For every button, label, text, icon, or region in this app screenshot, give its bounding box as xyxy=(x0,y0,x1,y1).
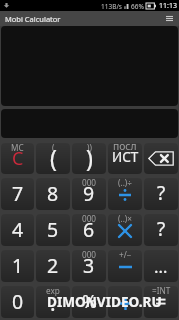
button[interactable]: 0 xyxy=(1,286,34,318)
staticText: = xyxy=(155,288,167,315)
staticText: MC xyxy=(11,143,24,153)
staticText: посл xyxy=(113,143,137,153)
staticText: ) xyxy=(86,143,93,173)
button[interactable]: 7 xyxy=(1,178,34,210)
button[interactable]: ? xyxy=(144,178,178,210)
staticText: ( xyxy=(50,143,57,173)
button[interactable]: Divide xyxy=(108,178,142,210)
staticText: % xyxy=(82,289,97,314)
staticText: 9 xyxy=(83,180,95,207)
staticText: )) xyxy=(87,143,92,153)
staticText: DIMONVIDEO.RU xyxy=(47,292,162,311)
button[interactable]: ( xyxy=(36,143,70,174)
staticText: 1 xyxy=(12,252,24,279)
staticText: 000 xyxy=(82,214,97,224)
staticText: 000 xyxy=(82,250,97,260)
staticText: 0 xyxy=(12,288,24,315)
button[interactable]: MC xyxy=(1,143,34,174)
staticText: 66% xyxy=(131,2,144,11)
staticText: 7 xyxy=(12,180,24,207)
button[interactable]: Menu xyxy=(165,13,174,24)
staticText: 5 xyxy=(47,216,59,243)
button[interactable]: =INT xyxy=(144,286,178,318)
button[interactable]: 2 xyxy=(36,250,70,282)
staticText: ? xyxy=(157,180,166,206)
staticText: 2 xyxy=(47,252,59,279)
staticText: ? xyxy=(157,216,166,242)
staticText: exp xyxy=(46,286,60,296)
staticText: 6 xyxy=(83,216,95,243)
button[interactable]: 000 xyxy=(72,178,106,210)
button[interactable]: 000 xyxy=(72,250,106,282)
button[interactable]: % xyxy=(72,286,106,318)
button[interactable]: … xyxy=(144,250,178,282)
staticText: 000 xyxy=(82,178,97,188)
staticText: 11:13 xyxy=(159,1,177,11)
staticText: C xyxy=(12,146,24,171)
staticText: 4 xyxy=(12,216,24,243)
button[interactable]: 8 xyxy=(36,178,70,210)
button[interactable]: exp xyxy=(36,286,70,318)
staticText: … xyxy=(154,255,168,278)
button[interactable]: 1 xyxy=(1,250,34,282)
staticText: +/− xyxy=(119,250,132,260)
button[interactable]: Multiply xyxy=(108,214,142,246)
button[interactable]: 4 xyxy=(1,214,34,246)
staticText: 8 xyxy=(47,180,59,207)
staticText: =INT xyxy=(152,286,171,296)
button[interactable]: посл xyxy=(108,143,142,174)
button[interactable]: Minus xyxy=(108,250,142,282)
button[interactable]: ? xyxy=(144,214,178,246)
staticText: ( xyxy=(52,143,55,153)
button[interactable]: 5 xyxy=(36,214,70,246)
staticText: 113B/s xyxy=(101,2,122,11)
button[interactable]: Plus xyxy=(108,286,142,318)
staticText: (..)÷ xyxy=(118,178,132,188)
staticText: 3 xyxy=(83,252,95,279)
staticText: ИСТ xyxy=(112,148,139,166)
button[interactable]: Backspace xyxy=(144,143,178,174)
button[interactable]: 000 xyxy=(72,214,106,246)
staticText: . xyxy=(50,289,56,318)
staticText: (..)× xyxy=(118,214,132,224)
staticText: Mobi Calculator xyxy=(5,14,61,24)
button[interactable]: )) xyxy=(72,143,106,174)
